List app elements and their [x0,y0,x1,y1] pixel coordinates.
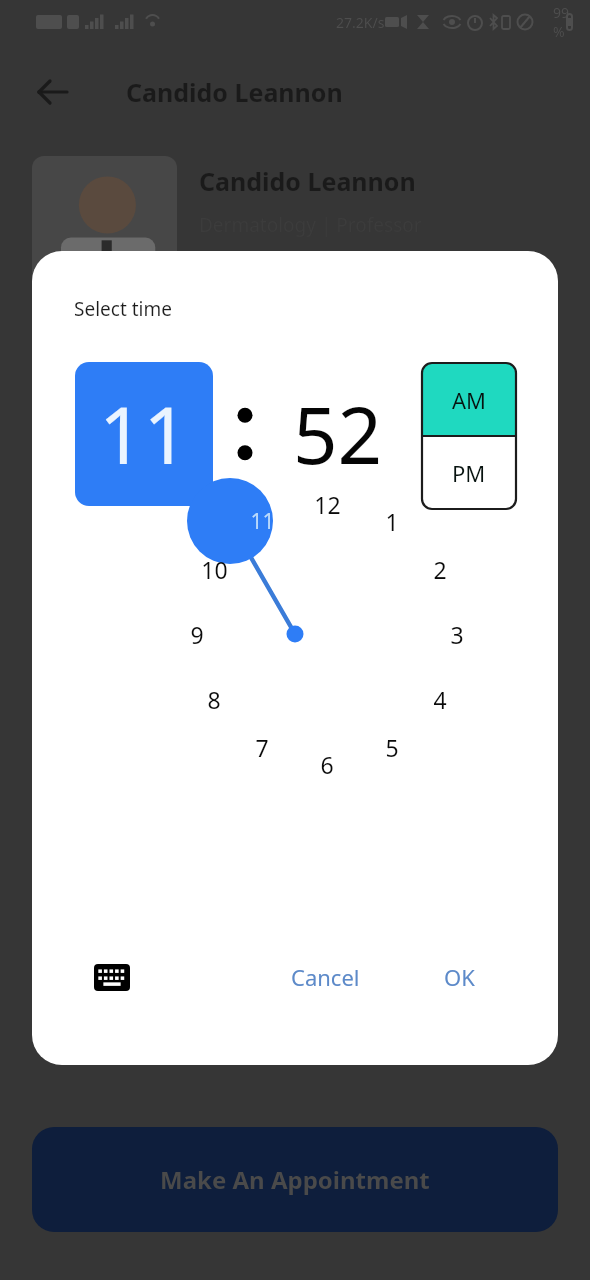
staticText: AM [452,385,487,415]
staticText: 99% [553,3,572,41]
staticText: 52 [293,381,383,487]
staticText: 6 [320,749,334,780]
button[interactable]: Make An Appointment [32,1127,558,1232]
staticText: 27.2K/s [336,13,385,32]
staticText: 3 [450,619,464,650]
staticText: Make An Appointment [160,1163,430,1196]
staticText: Candido Leannon [126,75,343,109]
staticText: Select time [74,296,172,322]
staticText: Cancel [291,962,360,992]
button[interactable]: 4 [414,677,466,721]
staticText: OK [444,962,475,992]
staticText: 10 [201,554,228,585]
button[interactable]: PM [422,436,516,509]
staticText: 1 [385,506,399,537]
button[interactable]: 11 [236,499,288,543]
button[interactable]: Cancel [270,953,380,1001]
button[interactable]: 3 [431,612,483,656]
staticText: 9 [190,619,204,650]
staticText: Candido Leannon [199,164,416,198]
button[interactable]: 11 [75,362,213,506]
button[interactable]: OK [422,953,496,1001]
button[interactable]: Switch to text input [88,953,136,1001]
button[interactable]: AM [422,363,516,436]
button[interactable]: 12 [301,482,353,526]
button[interactable]: 7 [236,725,288,769]
button[interactable]: 2 [414,547,466,591]
button[interactable]: 1 [366,499,418,543]
button[interactable]: 10 [188,547,240,591]
button[interactable]: 6 [301,742,353,786]
staticText: 12 [314,489,341,520]
staticText: 5 [385,732,399,763]
staticText: 11 [250,507,275,536]
staticText: 8 [207,684,221,715]
button[interactable]: Back [28,68,76,116]
staticText: PM [452,458,486,488]
staticText: 7 [255,732,269,763]
button[interactable]: 5 [366,725,418,769]
button[interactable]: 9 [171,612,223,656]
button[interactable]: 52 [268,362,408,506]
button[interactable]: 8 [188,677,240,721]
staticText: 2 [433,554,447,585]
staticText: 4 [433,684,447,715]
staticText: 11 [99,381,189,487]
